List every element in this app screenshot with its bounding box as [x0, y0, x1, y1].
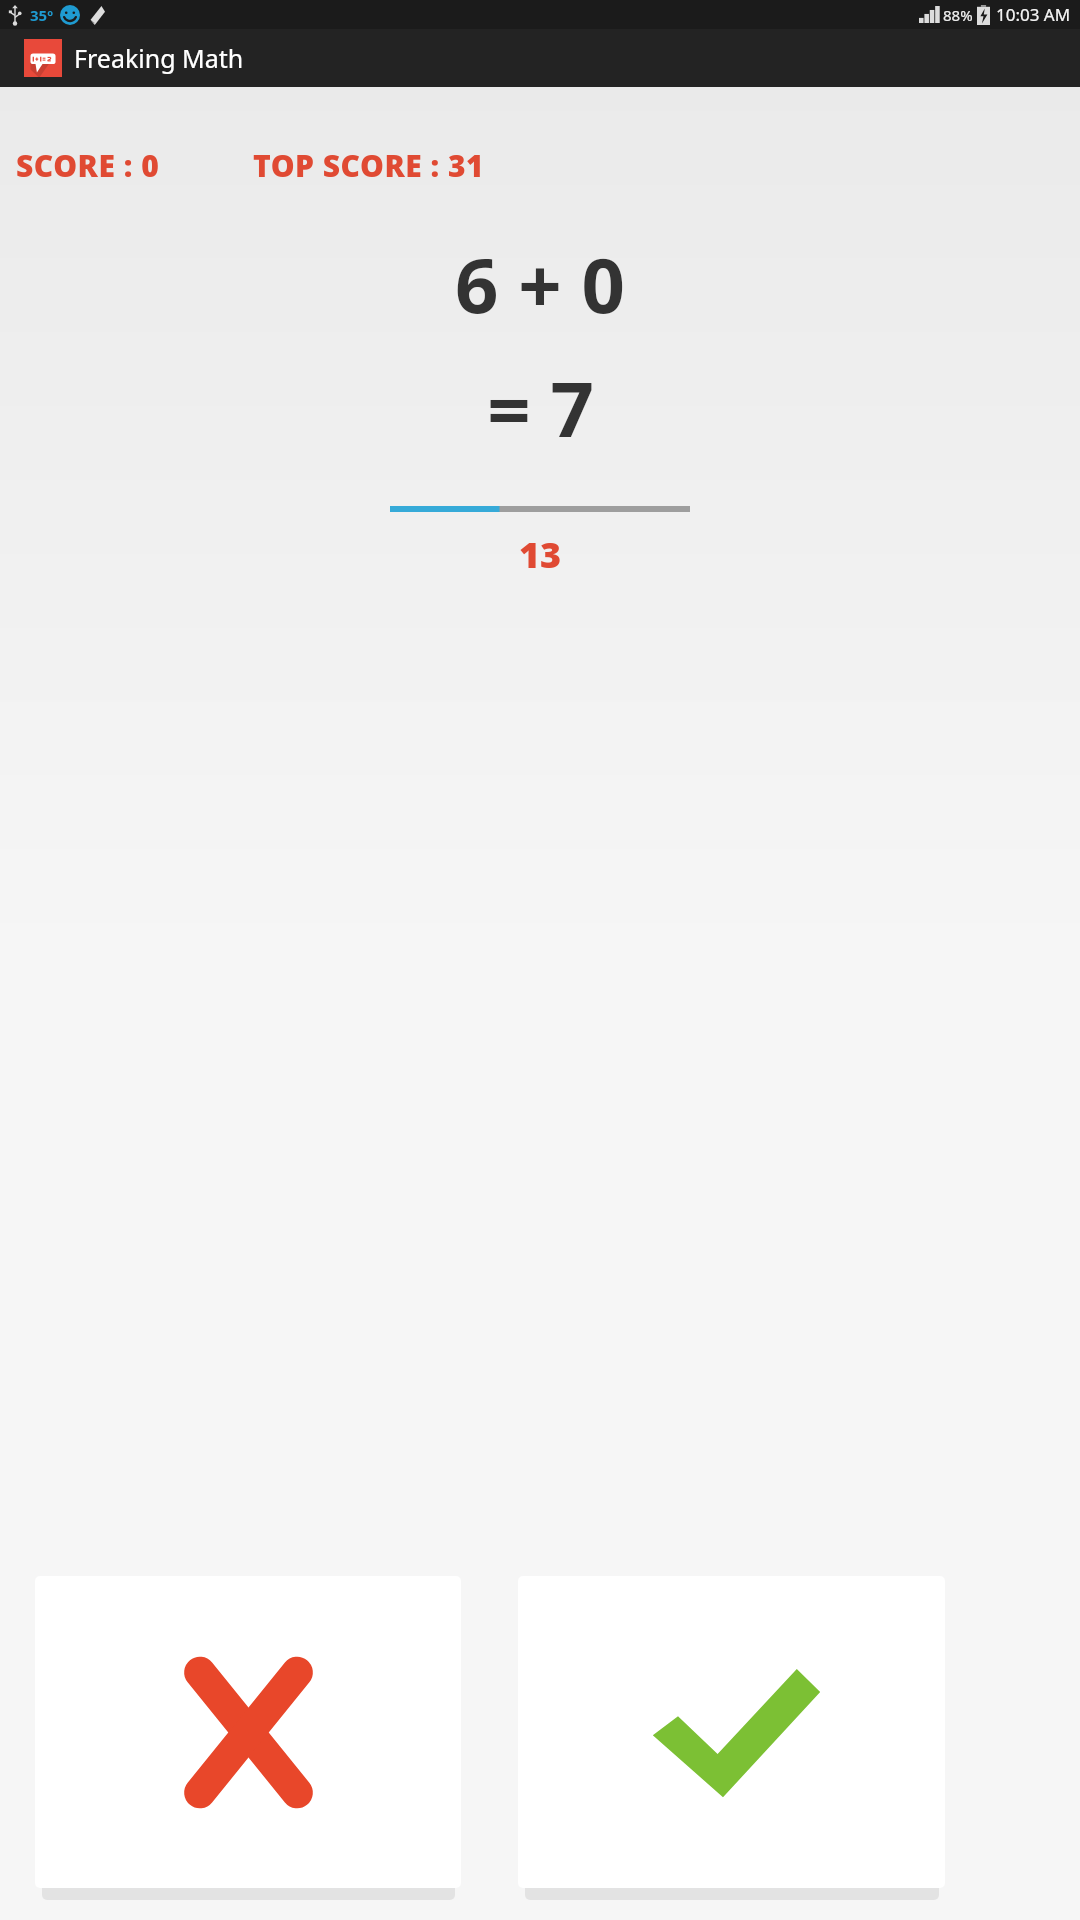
button[interactable]: Correct — [518, 1576, 945, 1888]
staticText: 13 — [519, 530, 562, 579]
button[interactable]: Wrong — [35, 1576, 461, 1888]
staticText: 10:03 AM — [996, 3, 1071, 26]
staticText: 35º — [30, 5, 53, 25]
staticText: TOP SCORE : 31 — [253, 145, 485, 186]
staticText: 6 + 0 — [455, 232, 625, 336]
staticText: = 7 — [487, 356, 594, 460]
staticText: SCORE : 0 — [16, 145, 160, 186]
staticText: Freaking Math — [74, 41, 244, 75]
staticText: 88% — [943, 5, 973, 25]
